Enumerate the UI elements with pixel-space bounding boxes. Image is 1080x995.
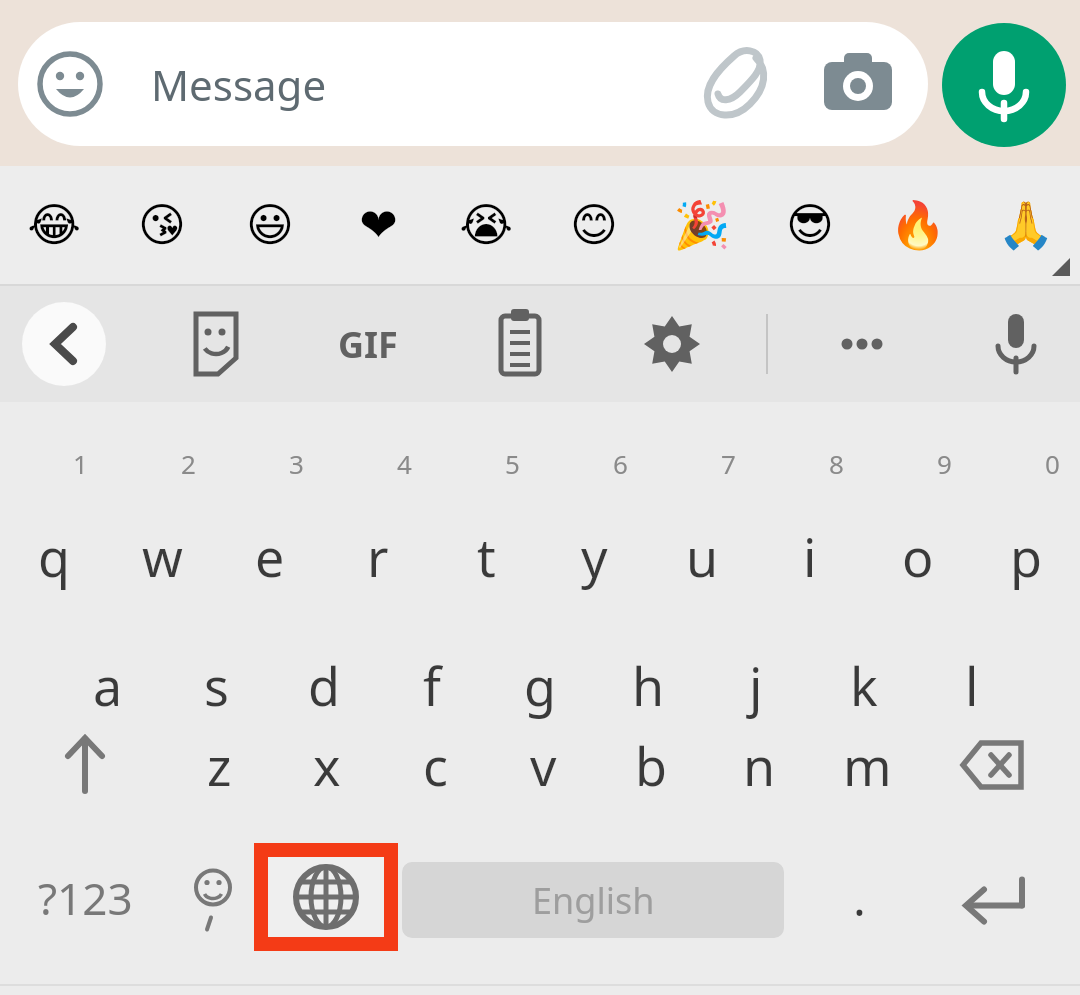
- staticText: 2: [181, 446, 196, 481]
- staticText: 🔥: [889, 198, 947, 252]
- button[interactable]: Clipboard: [474, 286, 566, 402]
- button[interactable]: English: [402, 862, 784, 938]
- button[interactable]: Change language: [268, 857, 384, 937]
- button[interactable]: p: [972, 480, 1080, 620]
- button[interactable]: i: [756, 480, 864, 620]
- staticText: g: [524, 650, 556, 721]
- button[interactable]: g: [486, 620, 594, 750]
- staticText: English: [532, 876, 655, 925]
- button[interactable]: Enter: [934, 840, 1054, 955]
- staticText: b: [635, 730, 667, 801]
- button[interactable]: Shift: [30, 700, 140, 830]
- staticText: 5: [505, 446, 520, 481]
- staticText: 😂: [27, 198, 81, 252]
- staticText: v: [530, 730, 557, 801]
- button[interactable]: m: [813, 700, 921, 830]
- staticText: q: [38, 521, 70, 592]
- button[interactable]: .: [806, 840, 912, 955]
- staticText: z: [207, 730, 232, 801]
- button[interactable]: x: [273, 700, 381, 830]
- button[interactable]: ❤️: [324, 166, 432, 284]
- staticText: d: [308, 650, 340, 721]
- button[interactable]: 🙏: [972, 166, 1080, 284]
- button[interactable]: Emoji: [170, 840, 256, 955]
- button[interactable]: b: [597, 700, 705, 830]
- button[interactable]: h: [594, 620, 702, 750]
- staticText: 1: [73, 446, 88, 481]
- button[interactable]: Back: [22, 302, 106, 386]
- staticText: GIF: [338, 320, 398, 369]
- button[interactable]: j: [702, 620, 810, 750]
- staticText: e: [255, 521, 285, 592]
- staticText: w: [142, 521, 183, 592]
- staticText: 😊: [570, 198, 618, 252]
- staticText: i: [803, 521, 817, 592]
- button[interactable]: s: [162, 620, 270, 750]
- button[interactable]: Voice message: [942, 23, 1066, 147]
- staticText: f: [423, 650, 441, 721]
- button[interactable]: q: [0, 480, 108, 620]
- staticText: 6: [613, 446, 628, 481]
- staticText: t: [477, 521, 496, 592]
- staticText: h: [632, 650, 665, 721]
- staticText: p: [1010, 521, 1042, 592]
- button[interactable]: 🔥: [864, 166, 972, 284]
- staticText: s: [204, 650, 229, 721]
- staticText: 😭: [459, 198, 513, 252]
- staticText: .: [853, 865, 866, 930]
- staticText: 😘: [138, 198, 186, 252]
- staticText: 4: [397, 446, 412, 481]
- staticText: c: [423, 730, 448, 801]
- button[interactable]: 🎉: [648, 166, 756, 284]
- button[interactable]: ?123: [10, 840, 160, 955]
- button[interactable]: n: [705, 700, 813, 830]
- button[interactable]: 😎: [756, 166, 864, 284]
- button[interactable]: e: [216, 480, 324, 620]
- button[interactable]: z: [165, 700, 273, 830]
- staticText: j: [749, 650, 763, 721]
- button[interactable]: GIF: [322, 286, 414, 402]
- button[interactable]: 😭: [432, 166, 540, 284]
- button[interactable]: d: [270, 620, 378, 750]
- button[interactable]: Stickers: [170, 286, 262, 402]
- button[interactable]: 😂: [0, 166, 108, 284]
- staticText: a: [93, 650, 123, 721]
- button[interactable]: t: [432, 480, 540, 620]
- staticText: 7: [721, 446, 736, 481]
- button[interactable]: c: [381, 700, 489, 830]
- button[interactable]: l: [918, 620, 1026, 750]
- button[interactable]: f: [378, 620, 486, 750]
- button[interactable]: u: [648, 480, 756, 620]
- button[interactable]: o: [864, 480, 972, 620]
- staticText: m: [843, 730, 892, 801]
- staticText: 😎: [786, 198, 834, 252]
- staticText: l: [965, 650, 979, 721]
- button[interactable]: 😘: [108, 166, 216, 284]
- staticText: r: [367, 521, 389, 592]
- staticText: ❤️: [359, 198, 398, 252]
- staticText: k: [850, 650, 878, 721]
- button[interactable]: More options: [816, 286, 908, 402]
- button[interactable]: Message: [18, 22, 928, 146]
- staticText: o: [902, 521, 934, 592]
- button[interactable]: a: [54, 620, 162, 750]
- button[interactable]: k: [810, 620, 918, 750]
- staticText: n: [743, 730, 776, 801]
- button[interactable]: w: [108, 480, 216, 620]
- button[interactable]: y: [540, 480, 648, 620]
- button[interactable]: r: [324, 480, 432, 620]
- button[interactable]: 😊: [540, 166, 648, 284]
- button[interactable]: 😃: [216, 166, 324, 284]
- button[interactable]: Backspace: [938, 700, 1048, 830]
- staticText: ?123: [38, 868, 133, 928]
- staticText: 3: [289, 446, 304, 481]
- button[interactable]: v: [489, 700, 597, 830]
- button[interactable]: Voice input: [970, 286, 1062, 402]
- staticText: 🙏: [997, 198, 1055, 252]
- staticText: 9: [937, 446, 952, 481]
- staticText: 😃: [246, 198, 294, 252]
- staticText: u: [686, 521, 719, 592]
- staticText: 0: [1045, 446, 1060, 481]
- staticText: x: [313, 730, 341, 801]
- button[interactable]: Settings: [626, 286, 718, 402]
